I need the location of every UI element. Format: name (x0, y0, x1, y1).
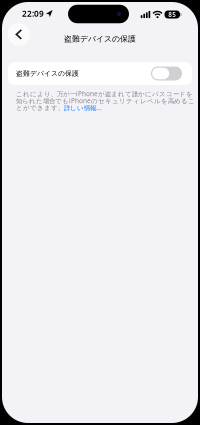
staticText: 85 (168, 10, 176, 19)
button[interactable]: 詳しい情報... (64, 103, 102, 112)
staticText: 詳しい情報... (64, 103, 102, 112)
staticText: とができます。 (16, 104, 64, 112)
staticText: これにより、万が一iPhoneが盗まれて誰かにパスコードを (16, 89, 193, 98)
button[interactable]: 盗難デバイスの保護 (8, 62, 192, 85)
staticText: 22:09 (22, 8, 44, 19)
staticText: 盗難デバイスの保護 (16, 69, 79, 78)
staticText: 知られた場合でもiPhoneのセキュリティレベルを高めるこ (16, 96, 195, 105)
staticText: 盗難デバイスの保護 (64, 34, 136, 44)
button[interactable]: Back (8, 23, 30, 46)
